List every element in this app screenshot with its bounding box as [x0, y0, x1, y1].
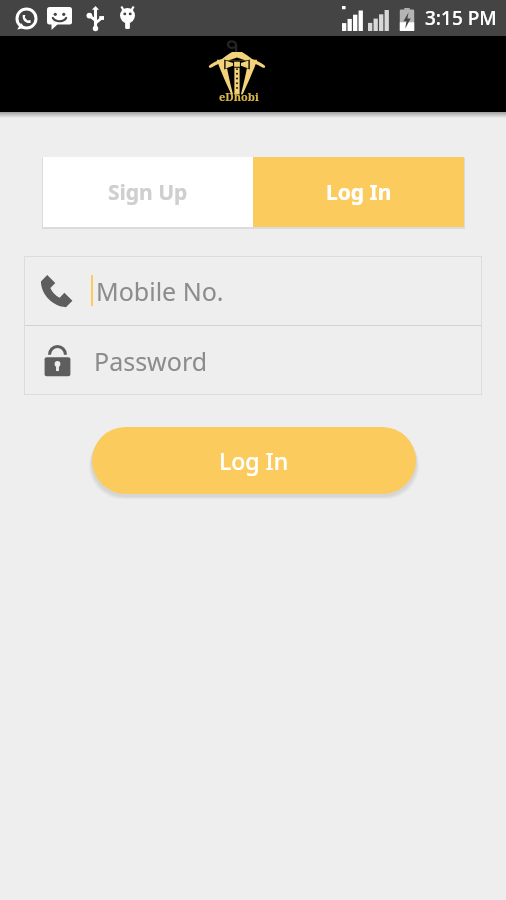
button[interactable]: Password	[24, 326, 482, 395]
other: Password	[43, 344, 72, 377]
button[interactable]: Log In	[253, 157, 464, 227]
staticText: Log In	[219, 445, 289, 476]
button[interactable]: Phone	[24, 256, 482, 325]
staticText: Sign Up	[108, 178, 188, 207]
staticText: Password	[94, 344, 208, 378]
staticText: Mobile No.	[96, 274, 224, 308]
other: Phone	[39, 273, 74, 308]
button[interactable]: Sign Up	[43, 157, 253, 227]
staticText: eDhobi	[219, 89, 259, 104]
staticText: 3:15 PM	[425, 5, 497, 31]
staticText: Log In	[326, 178, 392, 207]
button[interactable]: Log In	[92, 427, 416, 494]
